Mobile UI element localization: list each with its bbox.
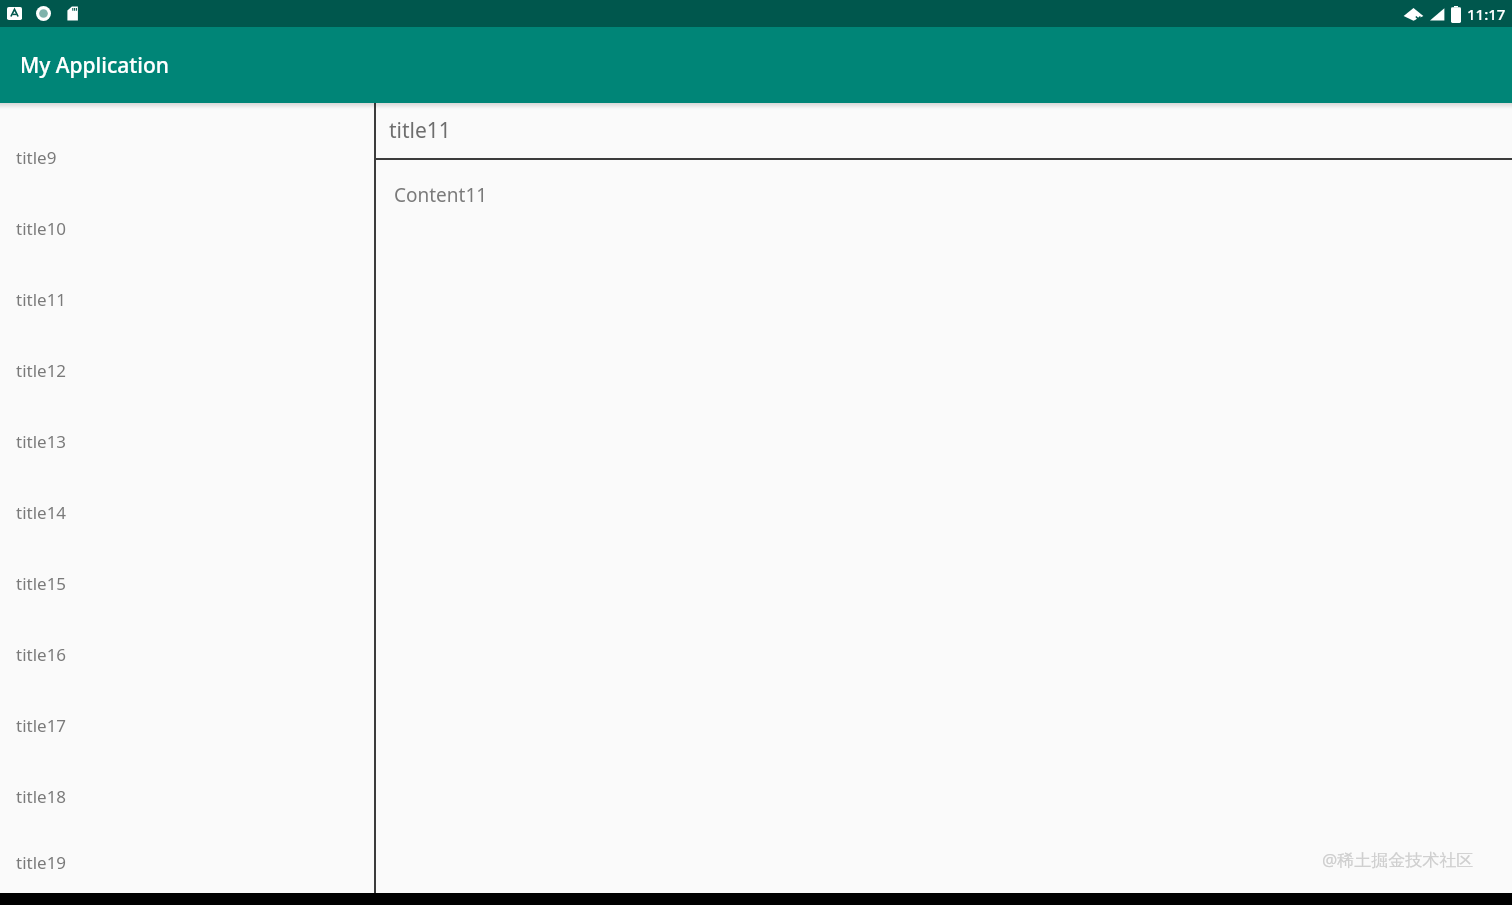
button[interactable]: title15 — [0, 548, 374, 619]
staticText: title10 — [16, 217, 67, 240]
button[interactable]: title9 — [0, 122, 374, 193]
button[interactable]: title11 — [376, 103, 1512, 158]
staticText: title16 — [16, 643, 67, 666]
staticText: title17 — [16, 714, 67, 737]
staticText: title18 — [16, 785, 67, 808]
staticText: title12 — [16, 359, 67, 382]
staticText: title14 — [16, 501, 67, 524]
staticText: title13 — [16, 430, 67, 453]
button[interactable]: title18 — [0, 761, 374, 832]
staticText: title11 — [16, 288, 67, 311]
button[interactable]: title17 — [0, 690, 374, 761]
button[interactable]: title19 — [0, 832, 374, 893]
button[interactable]: title11 — [0, 264, 374, 335]
button[interactable]: title10 — [0, 193, 374, 264]
staticText: title11 — [389, 116, 451, 145]
button[interactable]: title16 — [0, 619, 374, 690]
staticText: title19 — [16, 851, 67, 874]
button[interactable]: title14 — [0, 477, 374, 548]
staticText: @稀土掘金技术社区 — [1322, 848, 1474, 871]
staticText: title9 — [16, 146, 57, 169]
button[interactable]: title13 — [0, 406, 374, 477]
staticText: title15 — [16, 572, 67, 595]
staticText: My Application — [20, 51, 169, 80]
staticText: Content11 — [394, 182, 488, 208]
staticText: 11:17 — [1467, 4, 1506, 24]
button[interactable]: title12 — [0, 335, 374, 406]
